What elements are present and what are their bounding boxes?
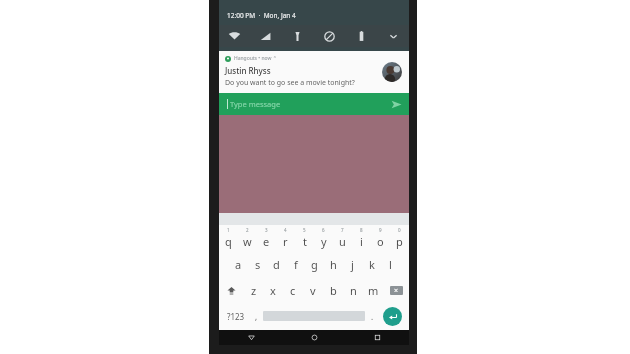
button[interactable]: g (305, 251, 324, 277)
button[interactable]: 7 (333, 225, 352, 251)
button[interactable]: 4 (276, 225, 295, 251)
button[interactable]: v (303, 277, 323, 303)
button[interactable]: s (248, 251, 267, 277)
button[interactable]: k (362, 251, 381, 277)
staticText: k (369, 257, 375, 272)
staticText: n (350, 283, 357, 298)
button[interactable]: 9 (371, 225, 390, 251)
staticText: 1 (227, 227, 230, 233)
staticText: m (368, 283, 379, 298)
staticText: c (290, 283, 296, 298)
button[interactable]: n (343, 277, 363, 303)
staticText: , (255, 311, 258, 322)
staticText: 7 (341, 227, 344, 233)
staticText: i (360, 234, 363, 249)
button[interactable]: f (286, 251, 305, 277)
button[interactable]: j (343, 251, 362, 277)
staticText: o (377, 234, 384, 249)
button[interactable]: x (263, 277, 283, 303)
button[interactable]: . (365, 303, 379, 329)
button[interactable]: Shift (219, 277, 244, 303)
staticText: p (396, 234, 403, 249)
button[interactable]: Back (219, 330, 283, 345)
staticText: Do you want to go see a movie tonight? (225, 78, 355, 88)
button[interactable]: Do not disturb (313, 25, 345, 47)
staticText: v (310, 283, 316, 298)
button[interactable]: c (283, 277, 303, 303)
button[interactable]: 3 (257, 225, 276, 251)
button[interactable]: z (244, 277, 263, 303)
staticText: 12:00 PM · Mon, Jan 4 (227, 11, 296, 20)
button[interactable]: ?123 (223, 303, 249, 329)
button[interactable]: Wi-Fi (219, 25, 250, 47)
button[interactable]: Hangouts • now ⌃ (219, 51, 409, 93)
staticText: 3 (265, 227, 268, 233)
staticText: r (283, 234, 288, 249)
button[interactable]: 2 (238, 225, 257, 251)
button[interactable]: b (323, 277, 343, 303)
button[interactable]: Send (387, 95, 405, 113)
staticText: u (339, 234, 346, 249)
button[interactable]: l (381, 251, 400, 277)
staticText: Justin Rhyss (225, 65, 271, 76)
staticText: z (251, 283, 257, 298)
button[interactable]: 6 (314, 225, 333, 251)
button[interactable]: d (267, 251, 286, 277)
staticText: y (321, 234, 327, 249)
staticText: Type message (230, 99, 281, 109)
button[interactable]: 5 (295, 225, 314, 251)
button[interactable]: m (363, 277, 383, 303)
staticText: j (351, 257, 354, 272)
staticText: h (330, 257, 337, 272)
button[interactable]: h (324, 251, 343, 277)
staticText: 5 (303, 227, 306, 233)
button[interactable]: 1 (219, 225, 238, 251)
button[interactable]: 8 (352, 225, 371, 251)
staticText: b (330, 283, 337, 298)
staticText: 9 (379, 227, 382, 233)
staticText: s (255, 257, 261, 272)
staticText: 6 (322, 227, 325, 233)
staticText: g (311, 257, 318, 272)
button[interactable]: , (249, 303, 263, 329)
staticText: 4 (284, 227, 287, 233)
button[interactable]: Enter (383, 307, 402, 326)
button[interactable]: Backspace (383, 277, 409, 303)
staticText: t (303, 234, 307, 249)
button[interactable]: Battery (345, 25, 377, 47)
button[interactable]: Expand (377, 25, 409, 47)
staticText: x (270, 283, 276, 298)
staticText: 0 (398, 227, 401, 233)
staticText: a (235, 257, 242, 272)
staticText: 2 (246, 227, 249, 233)
staticText: 8 (360, 227, 363, 233)
staticText: ?123 (227, 311, 245, 322)
button[interactable]: Type message (219, 93, 409, 115)
staticText: d (273, 257, 280, 272)
staticText: l (389, 257, 392, 272)
staticText: w (243, 234, 252, 249)
staticText: q (225, 234, 232, 249)
button[interactable]: Flashlight (281, 25, 313, 47)
button[interactable]: Mobile signal (250, 25, 281, 47)
staticText: . (371, 311, 374, 322)
staticText: f (294, 257, 298, 272)
button[interactable]: Recents (346, 330, 409, 345)
button[interactable]: 0 (390, 225, 409, 251)
button[interactable]: Home (283, 330, 346, 345)
staticText: Hangouts • now ⌃ (234, 55, 277, 62)
staticText: × (394, 286, 399, 295)
button[interactable]: Contact photo (382, 62, 402, 82)
staticText: e (263, 234, 270, 249)
button[interactable]: a (228, 251, 248, 277)
